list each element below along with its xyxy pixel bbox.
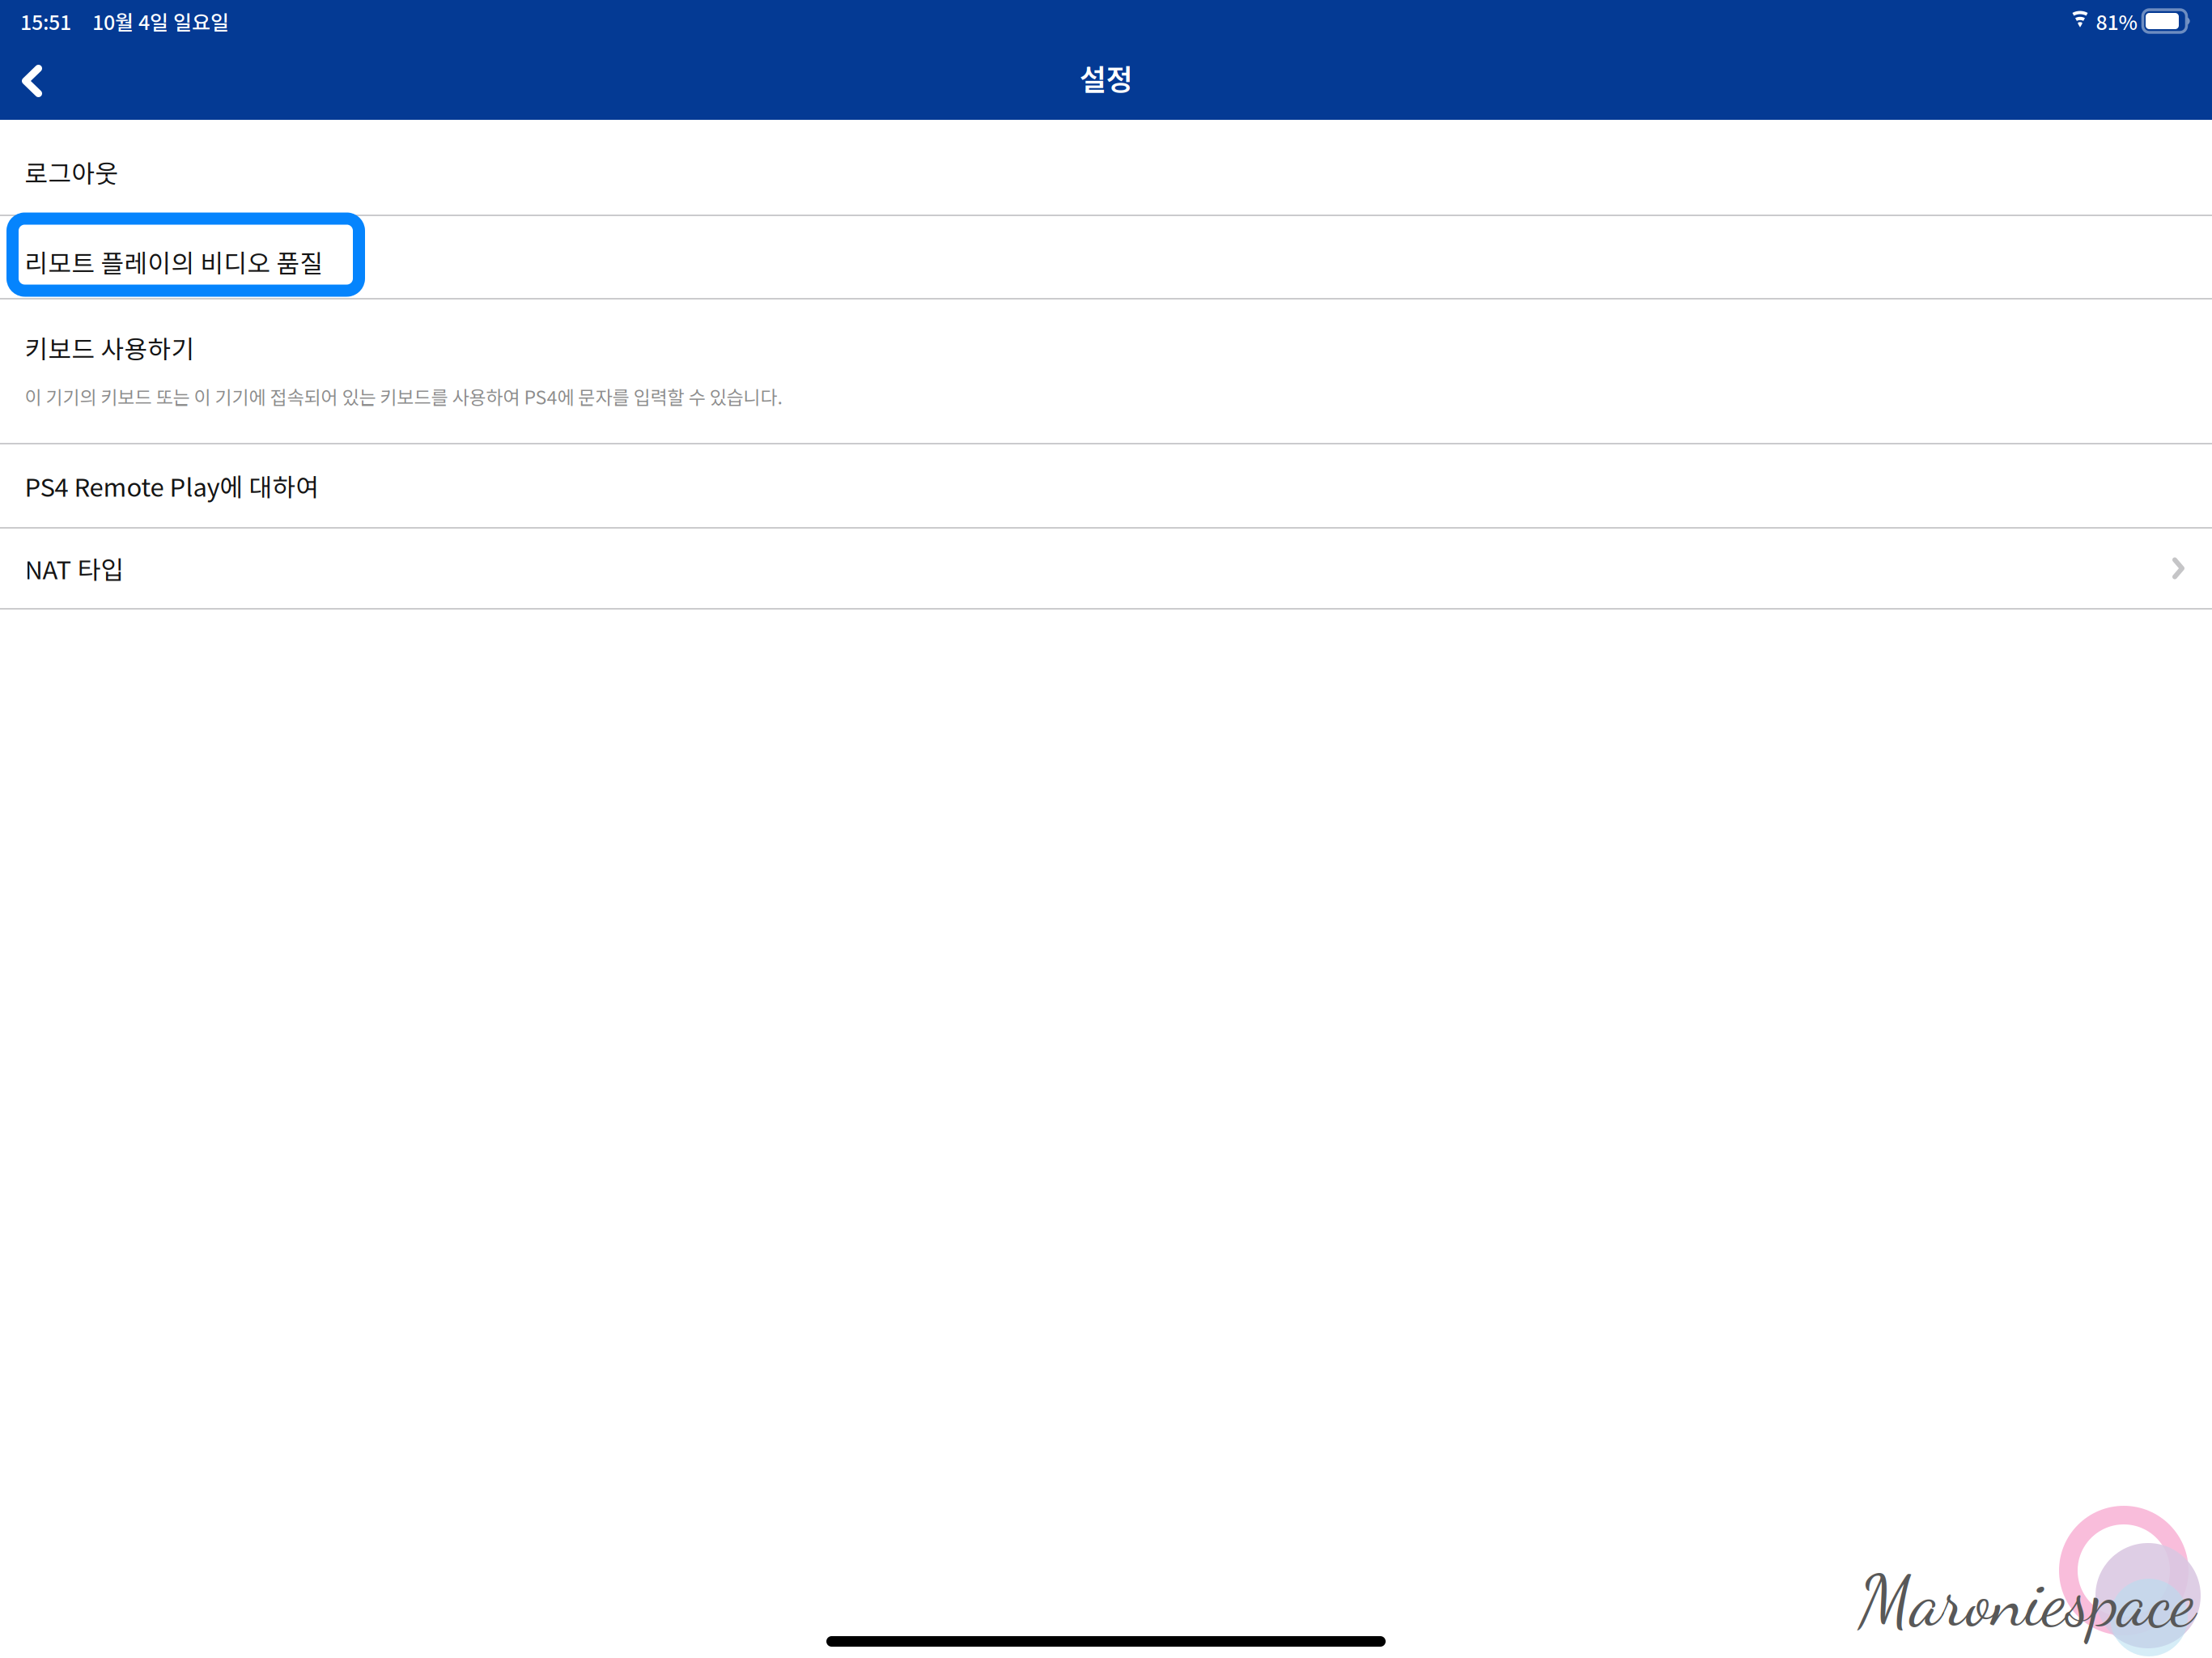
staticText: 로그아웃 [25, 154, 119, 190]
staticText: 15:51 [20, 6, 71, 36]
button[interactable]: 리모트 플레이의 비디오 품질 [0, 216, 2212, 298]
button[interactable]: 로그아웃 [0, 120, 2212, 215]
staticText: 이 기기의 키보드 또는 이 기기에 접속되어 있는 키보드를 사용하여 PS4… [25, 383, 782, 410]
staticText: Maroniespace [1858, 1558, 2195, 1644]
button[interactable]: PS4 Remote Play에 대하여 [0, 444, 2212, 527]
staticText: PS4 Remote Play에 대하여 [25, 468, 319, 504]
staticText: 10월 4일 일요일 [92, 6, 229, 36]
staticText: 설정 [1079, 57, 1133, 99]
staticText: 81% [2096, 6, 2137, 36]
staticText: 키보드 사용하기 [25, 329, 195, 366]
staticText: 리모트 플레이의 비디오 품질 [25, 244, 323, 280]
button[interactable]: NAT 타입 [0, 529, 2212, 608]
button[interactable]: Back [0, 42, 63, 120]
button[interactable]: 키보드 사용하기 [0, 300, 2212, 443]
staticText: NAT 타입 [25, 550, 124, 587]
